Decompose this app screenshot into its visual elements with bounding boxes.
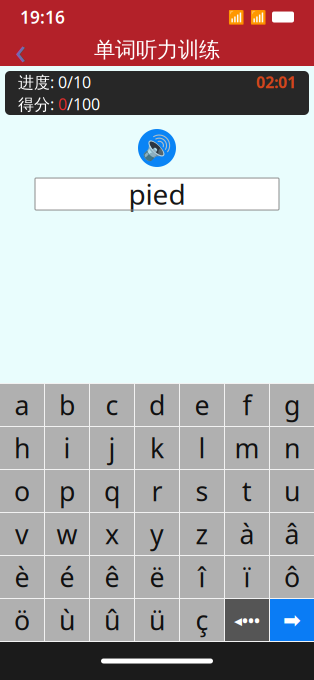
button[interactable]: m (225, 427, 269, 469)
staticText: û (104, 602, 120, 638)
button[interactable]: z (180, 513, 224, 555)
button[interactable]: k (135, 427, 179, 469)
staticText: ‹ (15, 25, 27, 75)
staticText: ➡ (283, 608, 301, 632)
staticText: 19:16 (20, 5, 65, 28)
button[interactable]: e (180, 384, 224, 426)
button[interactable]: Submit answer (270, 599, 314, 641)
staticText: d (149, 387, 165, 423)
staticText: pied (128, 175, 185, 213)
staticText: ï (243, 559, 250, 595)
button[interactable]: î (180, 556, 224, 598)
staticText: 02:01 (256, 71, 296, 93)
button[interactable]: j (90, 427, 134, 469)
staticText: j (108, 430, 115, 466)
button[interactable]: ê (90, 556, 134, 598)
staticText: c (105, 387, 118, 423)
button[interactable]: l (180, 427, 224, 469)
button[interactable]: n (270, 427, 314, 469)
button[interactable]: â (270, 513, 314, 555)
staticText: ë (149, 559, 164, 595)
button[interactable]: v (0, 513, 44, 555)
staticText: v (15, 516, 29, 552)
staticText: ö (14, 602, 30, 638)
button[interactable]: ù (45, 599, 89, 641)
staticText: z (195, 516, 208, 552)
button[interactable]: u (270, 470, 314, 512)
staticText: 进度: 0/10 (18, 71, 91, 93)
staticText: t (242, 473, 252, 509)
button[interactable]: ï (225, 556, 269, 598)
staticText: ù (59, 602, 75, 638)
button[interactable]: a (0, 384, 44, 426)
button[interactable]: t (225, 470, 269, 512)
staticText: w (56, 516, 77, 552)
staticText: n (284, 430, 300, 466)
staticText: ç (195, 602, 208, 638)
button[interactable]: ü (135, 599, 179, 641)
staticText: u (284, 473, 300, 509)
staticText: â (284, 516, 299, 552)
button[interactable]: b (45, 384, 89, 426)
staticText: 得分: (18, 93, 58, 115)
button[interactable]: i (45, 427, 89, 469)
staticText: p (59, 473, 75, 509)
staticText: i (63, 430, 70, 466)
button[interactable]: ö (0, 599, 44, 641)
staticText: è (14, 559, 29, 595)
staticText: g (284, 387, 300, 423)
button[interactable]: à (225, 513, 269, 555)
button[interactable]: o (0, 470, 44, 512)
staticText: o (14, 473, 30, 509)
button[interactable]: Play word audio (138, 129, 176, 167)
staticText: /100 (67, 93, 100, 115)
button[interactable]: s (180, 470, 224, 512)
staticText: r (151, 473, 162, 509)
staticText: 📶 (228, 9, 245, 25)
staticText: x (105, 516, 119, 552)
button[interactable]: q (90, 470, 134, 512)
staticText: s (195, 473, 208, 509)
button[interactable]: d (135, 384, 179, 426)
staticText: 🔊 (142, 134, 172, 162)
staticText: ê (104, 559, 119, 595)
button[interactable]: g (270, 384, 314, 426)
button[interactable]: é (45, 556, 89, 598)
staticText: m (234, 430, 259, 466)
button[interactable]: y (135, 513, 179, 555)
button[interactable]: è (0, 556, 44, 598)
staticText: a (14, 387, 29, 423)
button[interactable]: w (45, 513, 89, 555)
button[interactable]: f (225, 384, 269, 426)
staticText: î (198, 559, 205, 595)
button[interactable]: p (45, 470, 89, 512)
button[interactable]: x (90, 513, 134, 555)
button[interactable]: Back (0, 34, 42, 66)
button[interactable]: r (135, 470, 179, 512)
staticText: é (59, 559, 74, 595)
staticText: q (104, 473, 120, 509)
staticText: b (59, 387, 75, 423)
staticText: ◂••• (234, 609, 260, 631)
button[interactable]: û (90, 599, 134, 641)
staticText: ü (149, 602, 165, 638)
button[interactable]: ë (135, 556, 179, 598)
staticText: e (194, 387, 209, 423)
button[interactable]: ç (180, 599, 224, 641)
button[interactable]: c (90, 384, 134, 426)
staticText: 单词听力训练 (94, 37, 220, 63)
staticText: 📶 (250, 9, 267, 25)
staticText: k (150, 430, 164, 466)
staticText: h (14, 430, 30, 466)
staticText: ô (284, 559, 300, 595)
staticText: à (239, 516, 254, 552)
button[interactable]: h (0, 427, 44, 469)
staticText: 0 (58, 93, 67, 115)
staticText: f (242, 387, 251, 423)
button[interactable]: ô (270, 556, 314, 598)
staticText: y (150, 516, 164, 552)
staticText: l (198, 430, 205, 466)
button[interactable]: Delete (225, 599, 269, 641)
